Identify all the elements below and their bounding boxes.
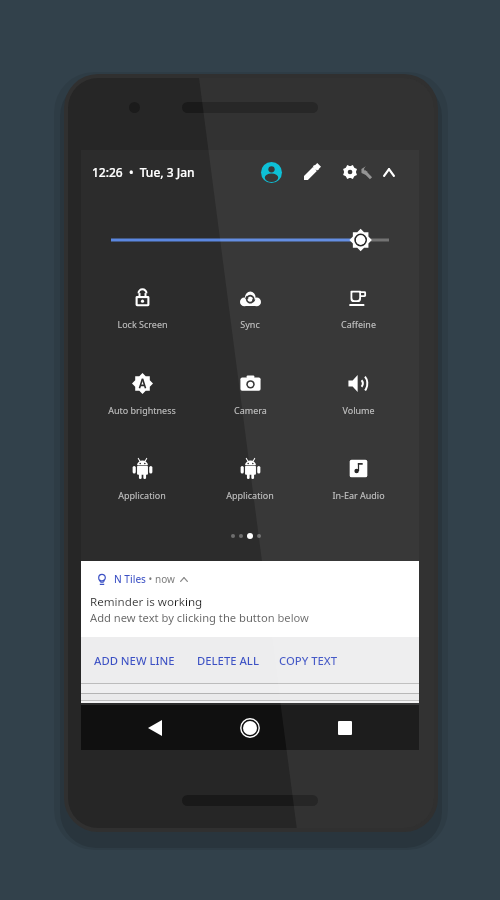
- staticText: Reminder is working: [90, 594, 203, 610]
- staticText: Auto brightness: [108, 404, 176, 416]
- button[interactable]: In-Ear Audio: [304, 455, 412, 517]
- button[interactable]: Back: [135, 705, 175, 750]
- staticText: N Tiles: [114, 572, 146, 586]
- staticText: Volume: [342, 404, 375, 416]
- button[interactable]: Account: [257, 158, 285, 186]
- staticText: DELETE ALL: [197, 653, 259, 668]
- button[interactable]: Recents: [325, 705, 365, 750]
- button[interactable]: Sync: [196, 284, 304, 346]
- staticText: Sync: [240, 318, 260, 330]
- staticText: Lock Screen: [117, 318, 168, 330]
- button[interactable]: Settings: [339, 158, 375, 186]
- staticText: 12:26 • Tue, 3 Jan: [92, 164, 195, 180]
- staticText: In-Ear Audio: [332, 489, 385, 501]
- button[interactable]: Lock Screen: [88, 284, 196, 346]
- button[interactable]: Caffeine: [304, 284, 412, 346]
- staticText: Add new text by clicking the button belo…: [90, 610, 309, 625]
- button[interactable]: DELETE ALL: [197, 647, 259, 674]
- button[interactable]: Edit: [297, 158, 325, 186]
- staticText: now: [155, 572, 175, 586]
- button[interactable]: Application: [88, 455, 196, 517]
- staticText: ADD NEW LINE: [94, 653, 175, 668]
- staticText: •: [146, 572, 155, 586]
- staticText: COPY TEXT: [279, 653, 338, 668]
- button[interactable]: Volume: [304, 370, 412, 432]
- staticText: Caffeine: [341, 318, 376, 330]
- button[interactable]: Camera: [196, 370, 304, 432]
- button[interactable]: Home: [230, 705, 270, 750]
- staticText: Application: [118, 489, 166, 501]
- button[interactable]: COPY TEXT: [279, 647, 338, 674]
- staticText: Application: [226, 489, 274, 501]
- button[interactable]: Collapse: [375, 158, 403, 186]
- button[interactable]: Auto brightness: [88, 370, 196, 432]
- staticText: Camera: [234, 404, 267, 416]
- button[interactable]: Application: [196, 455, 304, 517]
- button[interactable]: ADD NEW LINE: [94, 647, 175, 674]
